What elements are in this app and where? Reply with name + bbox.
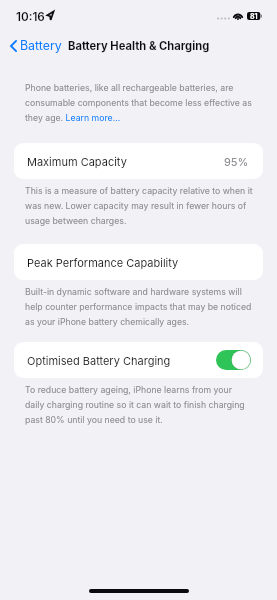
button[interactable]: Optimised Battery Charging toggle, on [216,350,251,370]
button[interactable]: Peak Performance Capability [14,244,263,280]
staticText: Battery Health & Charging [68,39,210,53]
staticText: Phone batteries, like all rechargeable b… [25,83,252,123]
staticText: To reduce battery ageing, iPhone learns … [25,385,245,425]
staticText: Battery [20,38,62,53]
button[interactable]: Optimised Battery Charging [14,342,263,378]
button[interactable]: Battery [0,33,68,58]
staticText: This is a measure of battery capacity re… [25,186,253,226]
staticText: Optimised Battery Charging [27,354,171,367]
button[interactable]: Maximum Capacity [14,143,263,179]
staticText: 10:16 [16,10,45,24]
staticText: 81 [250,12,258,20]
staticText: Maximum Capacity [27,155,127,168]
staticText: Built-in dynamic software and hardware s… [25,287,252,327]
staticText: 95% [224,155,249,168]
staticText: Peak Performance Capability [27,256,179,269]
